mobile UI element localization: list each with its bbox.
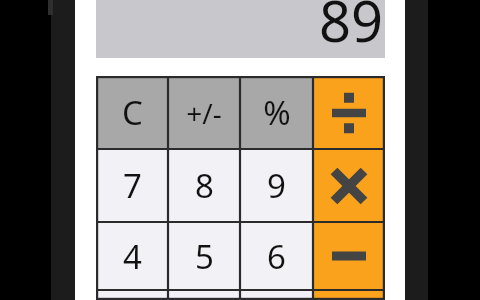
button[interactable]: 9 bbox=[240, 149, 313, 222]
button[interactable]: +/- bbox=[168, 76, 240, 149]
staticText: 8 bbox=[195, 163, 214, 208]
staticText: 9 bbox=[267, 163, 286, 208]
button[interactable]: 8 bbox=[168, 149, 240, 222]
staticText: 1 bbox=[123, 290, 142, 300]
staticText: 2 bbox=[195, 290, 214, 300]
staticText: 7 bbox=[123, 163, 142, 208]
button[interactable]: Add bbox=[313, 290, 385, 300]
staticText: 6 bbox=[267, 234, 286, 279]
button[interactable]: Subtract bbox=[313, 222, 385, 290]
button[interactable]: Multiply bbox=[313, 149, 385, 222]
staticText: C bbox=[122, 90, 143, 135]
staticText: +/- bbox=[186, 94, 222, 132]
button[interactable]: 6 bbox=[240, 222, 313, 290]
button[interactable]: % bbox=[240, 76, 313, 149]
button[interactable]: 7 bbox=[96, 149, 168, 222]
button[interactable]: 1 bbox=[96, 290, 168, 300]
staticText: 89 bbox=[318, 0, 383, 58]
button[interactable]: 5 bbox=[168, 222, 240, 290]
button[interactable]: C bbox=[96, 76, 168, 149]
button[interactable]: Divide bbox=[313, 76, 385, 149]
staticText: 3 bbox=[267, 290, 286, 300]
staticText: 4 bbox=[123, 234, 142, 279]
button[interactable]: 2 bbox=[168, 290, 240, 300]
button[interactable]: 4 bbox=[96, 222, 168, 290]
staticText: 5 bbox=[195, 234, 214, 279]
button[interactable]: 3 bbox=[240, 290, 313, 300]
staticText: % bbox=[263, 90, 291, 135]
